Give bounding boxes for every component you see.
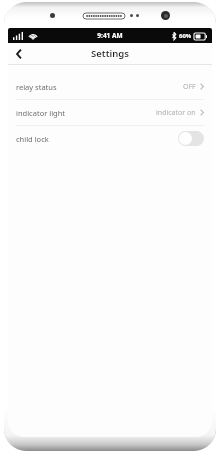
staticText: indicator light [16, 108, 66, 118]
staticText: relay status [16, 82, 57, 92]
staticText: indicator on [156, 108, 196, 118]
button[interactable]: relay status [8, 74, 212, 99]
button[interactable]: child lock [8, 126, 212, 151]
button[interactable]: Back [8, 43, 30, 64]
button[interactable]: indicator light [8, 100, 212, 125]
button[interactable]: Child lock toggle [178, 131, 204, 146]
staticText: Settings [91, 47, 129, 60]
staticText: 9:41 AM [97, 31, 123, 40]
staticText: OFF [183, 82, 196, 92]
staticText: 60% [179, 32, 192, 40]
staticText: child lock [16, 134, 49, 144]
